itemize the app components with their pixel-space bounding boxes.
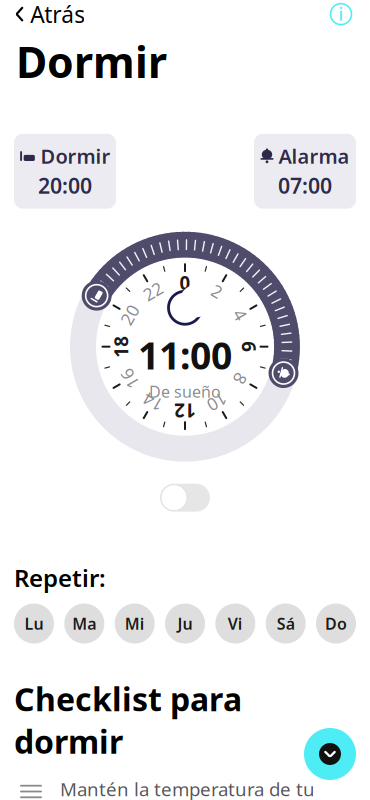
button[interactable]: Ju: [165, 603, 205, 643]
staticText: 10: [175, 271, 195, 294]
staticText: Vi: [228, 613, 243, 634]
staticText: 20:00: [38, 171, 92, 200]
staticText: 8: [180, 271, 190, 294]
staticText: 14: [175, 271, 195, 294]
staticText: 22: [175, 271, 195, 294]
staticText: Ju: [177, 613, 192, 634]
staticText: Dormir: [16, 33, 167, 90]
staticText: Sá: [277, 613, 295, 634]
button[interactable]: Activar horario de sueño: [160, 484, 210, 512]
staticText: Lu: [24, 613, 43, 634]
staticText: Alarma: [278, 143, 349, 169]
staticText: Mantén la temperatura de tu dormitorio e…: [60, 776, 316, 800]
staticText: Mi: [125, 613, 145, 634]
staticText: Checklist para dormir: [14, 677, 242, 762]
button[interactable]: Sá: [266, 603, 306, 643]
staticText: 07:00: [278, 171, 332, 200]
button[interactable]: Atrás: [14, 0, 93, 35]
button[interactable]: Dormir: [14, 134, 116, 209]
staticText: Repetir:: [14, 562, 106, 594]
button[interactable]: Hora de alarma: [170, 230, 200, 260]
button[interactable]: Desplazar hacia arriba: [304, 728, 356, 780]
staticText: 4: [180, 271, 190, 294]
button[interactable]: Ma: [64, 603, 104, 643]
staticText: Ma: [72, 613, 96, 634]
staticText: Do: [325, 613, 347, 634]
button[interactable]: Alarma: [254, 134, 356, 209]
button[interactable]: Hora de dormir: [170, 230, 200, 260]
staticText: 11:00: [138, 330, 232, 380]
staticText: 18: [174, 270, 196, 295]
staticText: 6: [179, 270, 190, 295]
staticText: i: [338, 3, 343, 26]
staticText: 2: [180, 271, 190, 294]
button[interactable]: Vi: [215, 603, 255, 643]
button[interactable]: Información: [326, 0, 356, 29]
button[interactable]: Mi: [115, 603, 155, 643]
staticText: Dormir: [40, 143, 110, 169]
staticText: 0: [179, 270, 190, 295]
staticText: Atrás: [30, 0, 85, 29]
button[interactable]: Reordenar: [14, 776, 48, 800]
button[interactable]: Lu: [14, 603, 54, 643]
staticText: 20: [175, 271, 195, 294]
staticText: 16: [175, 271, 195, 294]
button[interactable]: Do: [316, 603, 356, 643]
staticText: 12: [174, 270, 196, 295]
staticText: De sueño: [149, 381, 221, 402]
